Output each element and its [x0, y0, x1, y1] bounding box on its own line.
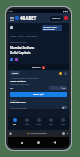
button[interactable]: Single	[10, 71, 20, 75]
staticText: Bet	[10, 87, 14, 90]
button[interactable]: Live	[8, 117, 21, 130]
staticText: 4RABET	[20, 15, 37, 21]
button[interactable]: Place bet	[10, 92, 67, 97]
staticText: Delhi Capitals	[10, 51, 31, 55]
button[interactable]: Delete	[64, 72, 67, 75]
staticText: Tomorrow at 19:30	[10, 41, 27, 44]
staticText: Single	[12, 72, 18, 74]
button[interactable]: Sports	[21, 117, 33, 130]
button[interactable]: Slots	[45, 117, 57, 130]
button[interactable]: ₹ 100	[49, 86, 67, 90]
button[interactable]: Tabs	[62, 132, 65, 135]
button[interactable]: Menu	[9, 16, 14, 21]
button[interactable]: Home	[9, 132, 12, 135]
button[interactable]: Notifications	[64, 16, 68, 20]
staticText: Potential Win	[10, 101, 26, 104]
staticText: Slots	[49, 123, 53, 125]
button[interactable]: Bonus	[59, 72, 62, 75]
button[interactable]: Mumbai Indians	[42, 25, 62, 31]
staticText: More	[61, 123, 65, 125]
staticText: ✓ Mumbai Indians vs Delhi Capitals	[10, 77, 39, 79]
button[interactable]: Favourites	[10, 26, 13, 29]
staticText: Total bet	[10, 99, 17, 101]
staticText: Cricket › India › Indian Prem	[10, 35, 37, 38]
staticText: Delhi Capitals	[43, 28, 55, 30]
button[interactable]: SIGN UP	[50, 16, 63, 21]
staticText: Mumbai Indians	[10, 46, 35, 50]
button[interactable]: More	[57, 117, 69, 130]
button[interactable]: Back	[53, 141, 56, 144]
staticText: 9:41	[9, 10, 14, 13]
staticText: ● ● ▮	[63, 10, 68, 12]
staticText: Live	[13, 123, 16, 125]
button[interactable]: Accept odds changes	[10, 106, 67, 109]
staticText: Sports	[25, 123, 30, 125]
staticText: Delhi Capitals	[10, 80, 26, 83]
staticText: SIGN UP	[52, 17, 61, 20]
staticText: Mumbai Indians	[43, 26, 57, 28]
staticText: 🔒 4rabet.com/betslip	[27, 132, 47, 135]
button[interactable]: Casino	[33, 117, 45, 130]
button[interactable]: Home	[37, 141, 40, 144]
staticText: Place bet	[33, 93, 44, 96]
staticText: Casino	[36, 123, 42, 125]
staticText: ₹ 100	[61, 87, 66, 89]
staticText: Winner (incl. super over)	[10, 83, 30, 85]
staticText: BETSLIP	[32, 66, 41, 69]
staticText: 1	[43, 67, 44, 69]
staticText: Accept odds changes	[10, 107, 27, 109]
button[interactable]: Search	[15, 16, 19, 20]
